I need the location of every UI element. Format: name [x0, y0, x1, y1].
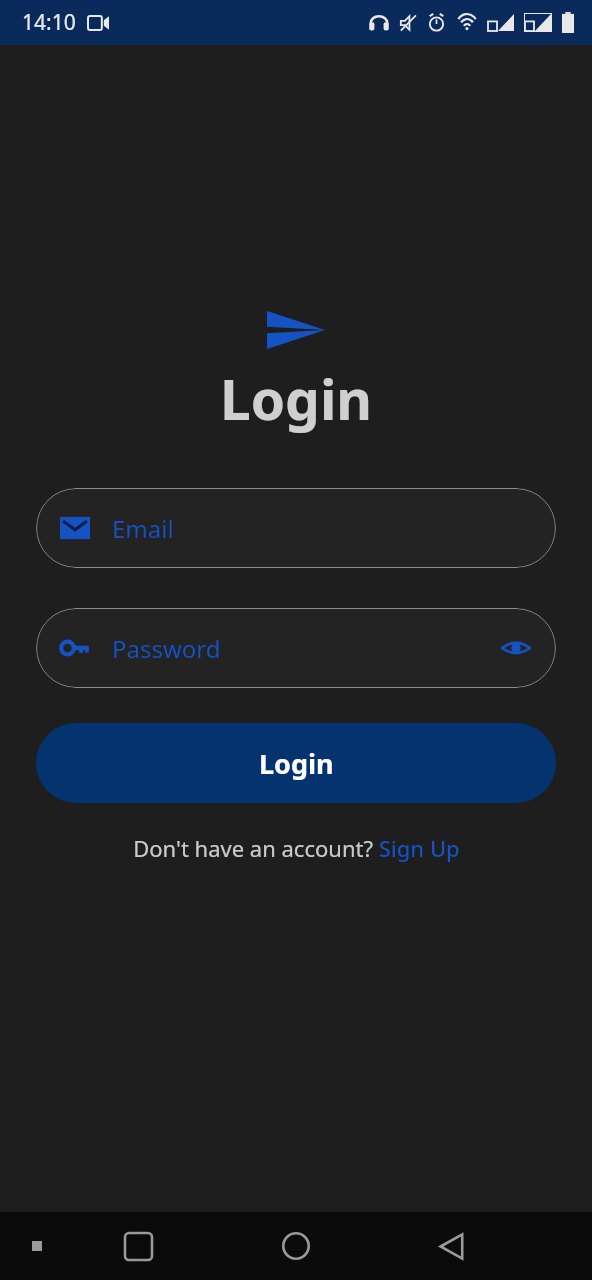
button[interactable]: Login — [36, 723, 556, 803]
button[interactable]: Home — [268, 1218, 324, 1274]
button[interactable]: Show password — [496, 628, 536, 668]
staticText: Password — [112, 632, 221, 665]
staticText: Login — [259, 745, 334, 782]
button[interactable]: Password — [36, 608, 556, 688]
button[interactable]: Email — [36, 488, 556, 568]
staticText: 14:10 — [22, 8, 76, 37]
button[interactable]: Back — [424, 1218, 480, 1274]
button[interactable]: Hide navigation bar — [24, 1233, 50, 1259]
button[interactable]: Don't have an account? Sign Up — [0, 833, 592, 863]
staticText: Email — [112, 512, 174, 545]
staticText: Login — [220, 361, 373, 436]
staticText: Don't have an account? Sign Up — [133, 833, 460, 863]
button[interactable]: Recent apps — [110, 1218, 166, 1274]
